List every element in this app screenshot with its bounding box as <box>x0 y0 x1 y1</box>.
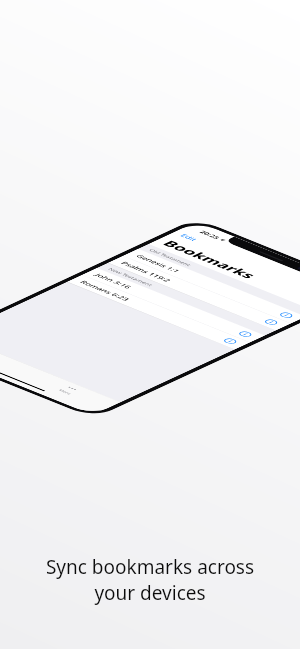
button[interactable]: Bookmarks <box>0 335 37 376</box>
button[interactable]: John 3:16 <box>82 268 265 343</box>
staticText: Genesis 1:1 <box>134 253 183 274</box>
staticText: Bookmarks <box>159 238 261 281</box>
staticText: 20:25 <box>198 230 222 240</box>
staticText: Old Testament <box>147 248 193 267</box>
staticText: John 3:16 <box>93 272 134 290</box>
staticText: Edit <box>178 233 200 242</box>
staticText: Romans 6:23 <box>78 279 132 302</box>
button[interactable]: Edit <box>172 230 205 244</box>
button[interactable]: More <box>20 368 120 410</box>
staticText: Sync bookmarks across your devices <box>0 554 300 605</box>
button[interactable]: Genesis 1:1 <box>123 249 300 324</box>
button[interactable]: Romans 6:23 <box>67 275 250 349</box>
button[interactable]: Psalms 119:2 <box>108 256 290 331</box>
staticText: New Testament <box>106 267 155 287</box>
staticText: Psalms 119:2 <box>119 260 173 283</box>
staticText: More <box>57 388 73 395</box>
